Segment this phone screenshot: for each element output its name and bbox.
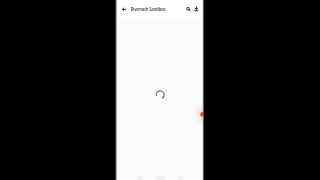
button[interactable]: Open chat: [198, 110, 203, 119]
button[interactable]: Downloads: [192, 4, 202, 14]
button[interactable]: Home: [155, 174, 165, 180]
staticText: Rivertech Sandbox: [131, 6, 166, 12]
button[interactable]: Back: [136, 174, 144, 180]
button[interactable]: Search: [184, 4, 194, 14]
button[interactable]: Recent apps: [177, 174, 185, 180]
button[interactable]: Navigate up: [119, 4, 130, 15]
